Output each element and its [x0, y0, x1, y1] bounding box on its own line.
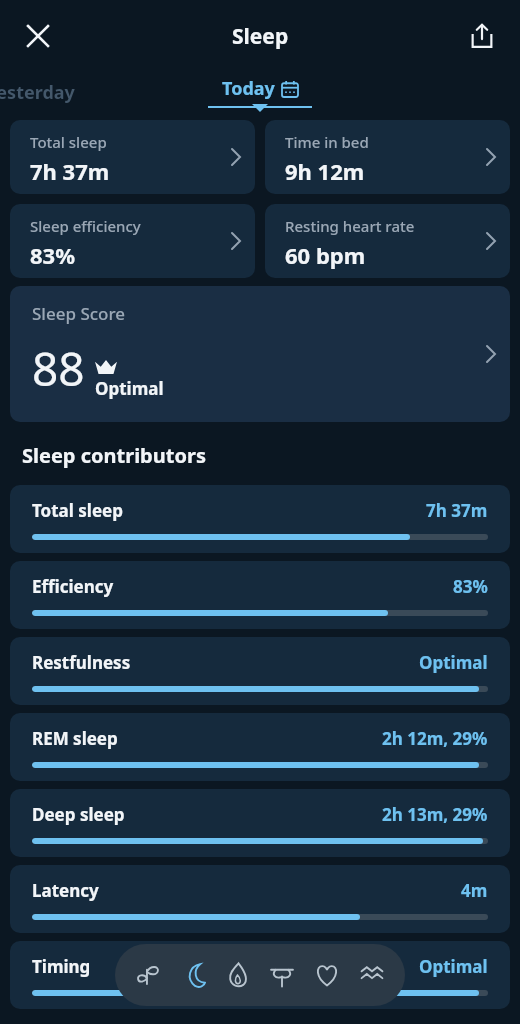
staticText: Today: [222, 76, 275, 101]
staticText: Resting heart rate: [285, 216, 415, 236]
staticText: 4m: [461, 879, 488, 902]
button[interactable]: REM sleep: [10, 713, 510, 781]
button[interactable]: Today: [208, 76, 312, 108]
button[interactable]: Latency: [10, 865, 510, 933]
staticText: Optimal: [419, 955, 488, 978]
staticText: 2h 12m, 29%: [382, 727, 488, 750]
button[interactable]: Efficiency: [10, 561, 510, 629]
staticText: Optimal: [419, 651, 488, 674]
staticText: Timing: [32, 955, 91, 978]
staticText: 7h 37m: [426, 499, 488, 522]
button[interactable]: Calories: [216, 953, 260, 997]
button[interactable]: Deep sleep: [10, 789, 510, 857]
staticText: REM sleep: [32, 727, 118, 750]
button[interactable]: Activity: [126, 953, 170, 997]
staticText: 83%: [453, 575, 488, 598]
staticText: Total sleep: [32, 499, 123, 522]
button[interactable]: Share: [458, 12, 506, 60]
staticText: Sleep: [232, 22, 289, 51]
staticText: 9h 12m: [285, 156, 365, 186]
button[interactable]: Total sleep: [10, 485, 510, 553]
button[interactable]: Restfulness: [10, 637, 510, 705]
button[interactable]: Total sleep: [10, 120, 255, 194]
button[interactable]: Resting heart rate: [265, 204, 510, 278]
button[interactable]: Time in bed: [265, 120, 510, 194]
staticText: 2h 13m, 29%: [382, 803, 488, 826]
staticText: Latency: [32, 879, 99, 902]
button[interactable]: Trends: [350, 953, 394, 997]
staticText: Total sleep: [30, 132, 107, 152]
staticText: 7h 37m: [30, 156, 110, 186]
staticText: Optimal: [95, 377, 164, 400]
button[interactable]: Sleep: [171, 953, 215, 997]
staticText: Efficiency: [32, 575, 114, 598]
staticText: 88: [32, 337, 85, 400]
staticText: 83%: [30, 240, 76, 270]
button[interactable]: Sleep Score: [10, 286, 510, 422]
staticText: Sleep Score: [32, 302, 126, 325]
staticText: Deep sleep: [32, 803, 125, 826]
staticText: Time in bed: [285, 132, 369, 152]
staticText: Sleep efficiency: [30, 216, 141, 236]
button[interactable]: Yesterday: [0, 80, 83, 105]
button[interactable]: Timing: [10, 941, 510, 1009]
button[interactable]: Heart: [305, 953, 349, 997]
staticText: Sleep contributors: [22, 442, 206, 469]
button[interactable]: Stress: [260, 953, 304, 997]
staticText: Restfulness: [32, 651, 131, 674]
button[interactable]: Sleep efficiency: [10, 204, 255, 278]
staticText: 60 bpm: [285, 240, 366, 270]
button[interactable]: Close: [14, 12, 62, 60]
